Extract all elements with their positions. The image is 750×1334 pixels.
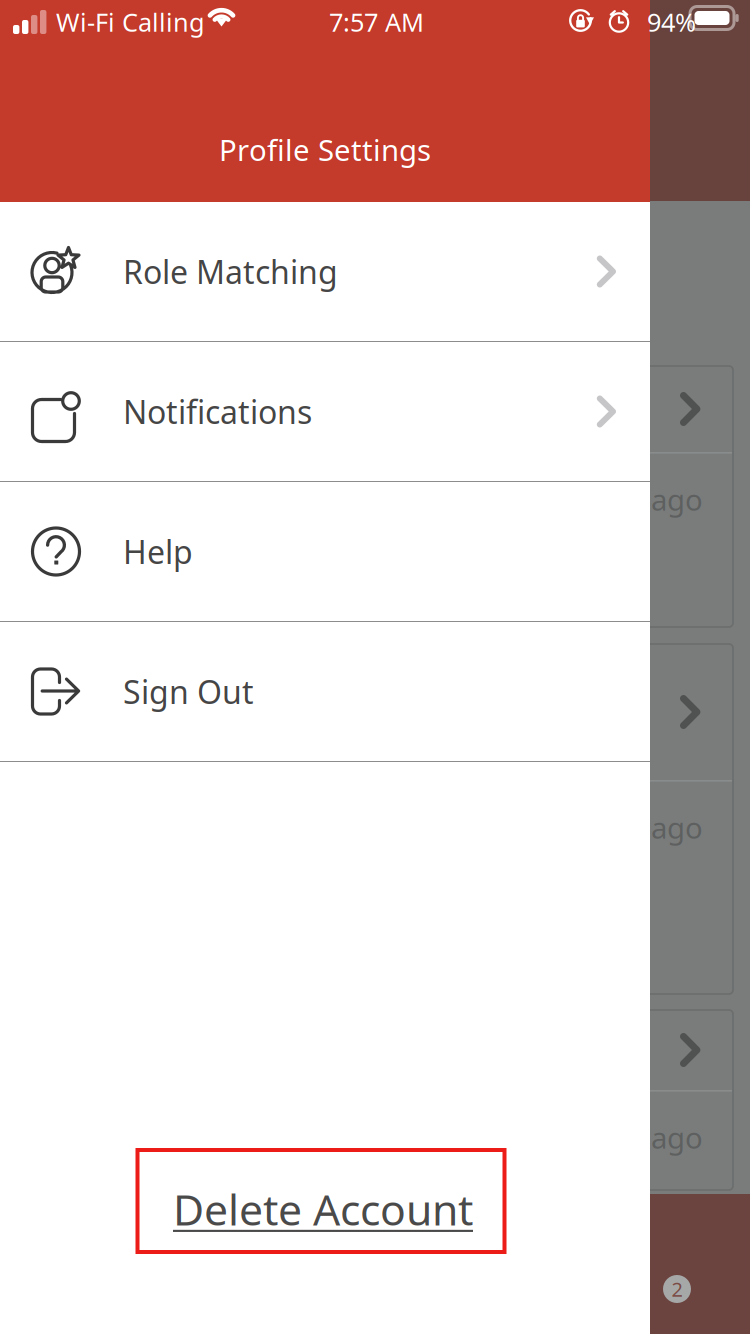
- staticText: Sign Out: [123, 670, 254, 713]
- staticText: Help: [123, 530, 193, 573]
- staticText: ago: [651, 480, 703, 519]
- button[interactable]: Role Matching: [0, 202, 650, 342]
- staticText: Role Matching: [123, 250, 338, 293]
- staticText: 2: [671, 1276, 682, 1302]
- staticText: Profile Settings: [219, 130, 431, 169]
- staticText: 7:57 AM: [329, 5, 424, 39]
- button[interactable]: Delete Account: [141, 1150, 508, 1252]
- staticText: 94%: [647, 5, 696, 39]
- staticText: Delete Account: [173, 1181, 473, 1237]
- staticText: Notifications: [123, 390, 312, 433]
- staticText: ago: [651, 808, 703, 847]
- staticText: Wi-Fi Calling: [56, 5, 205, 39]
- staticText: ago: [651, 1118, 703, 1157]
- button[interactable]: Notifications: [0, 342, 650, 482]
- button[interactable]: Help: [0, 482, 650, 622]
- button[interactable]: Sign Out: [0, 622, 650, 762]
